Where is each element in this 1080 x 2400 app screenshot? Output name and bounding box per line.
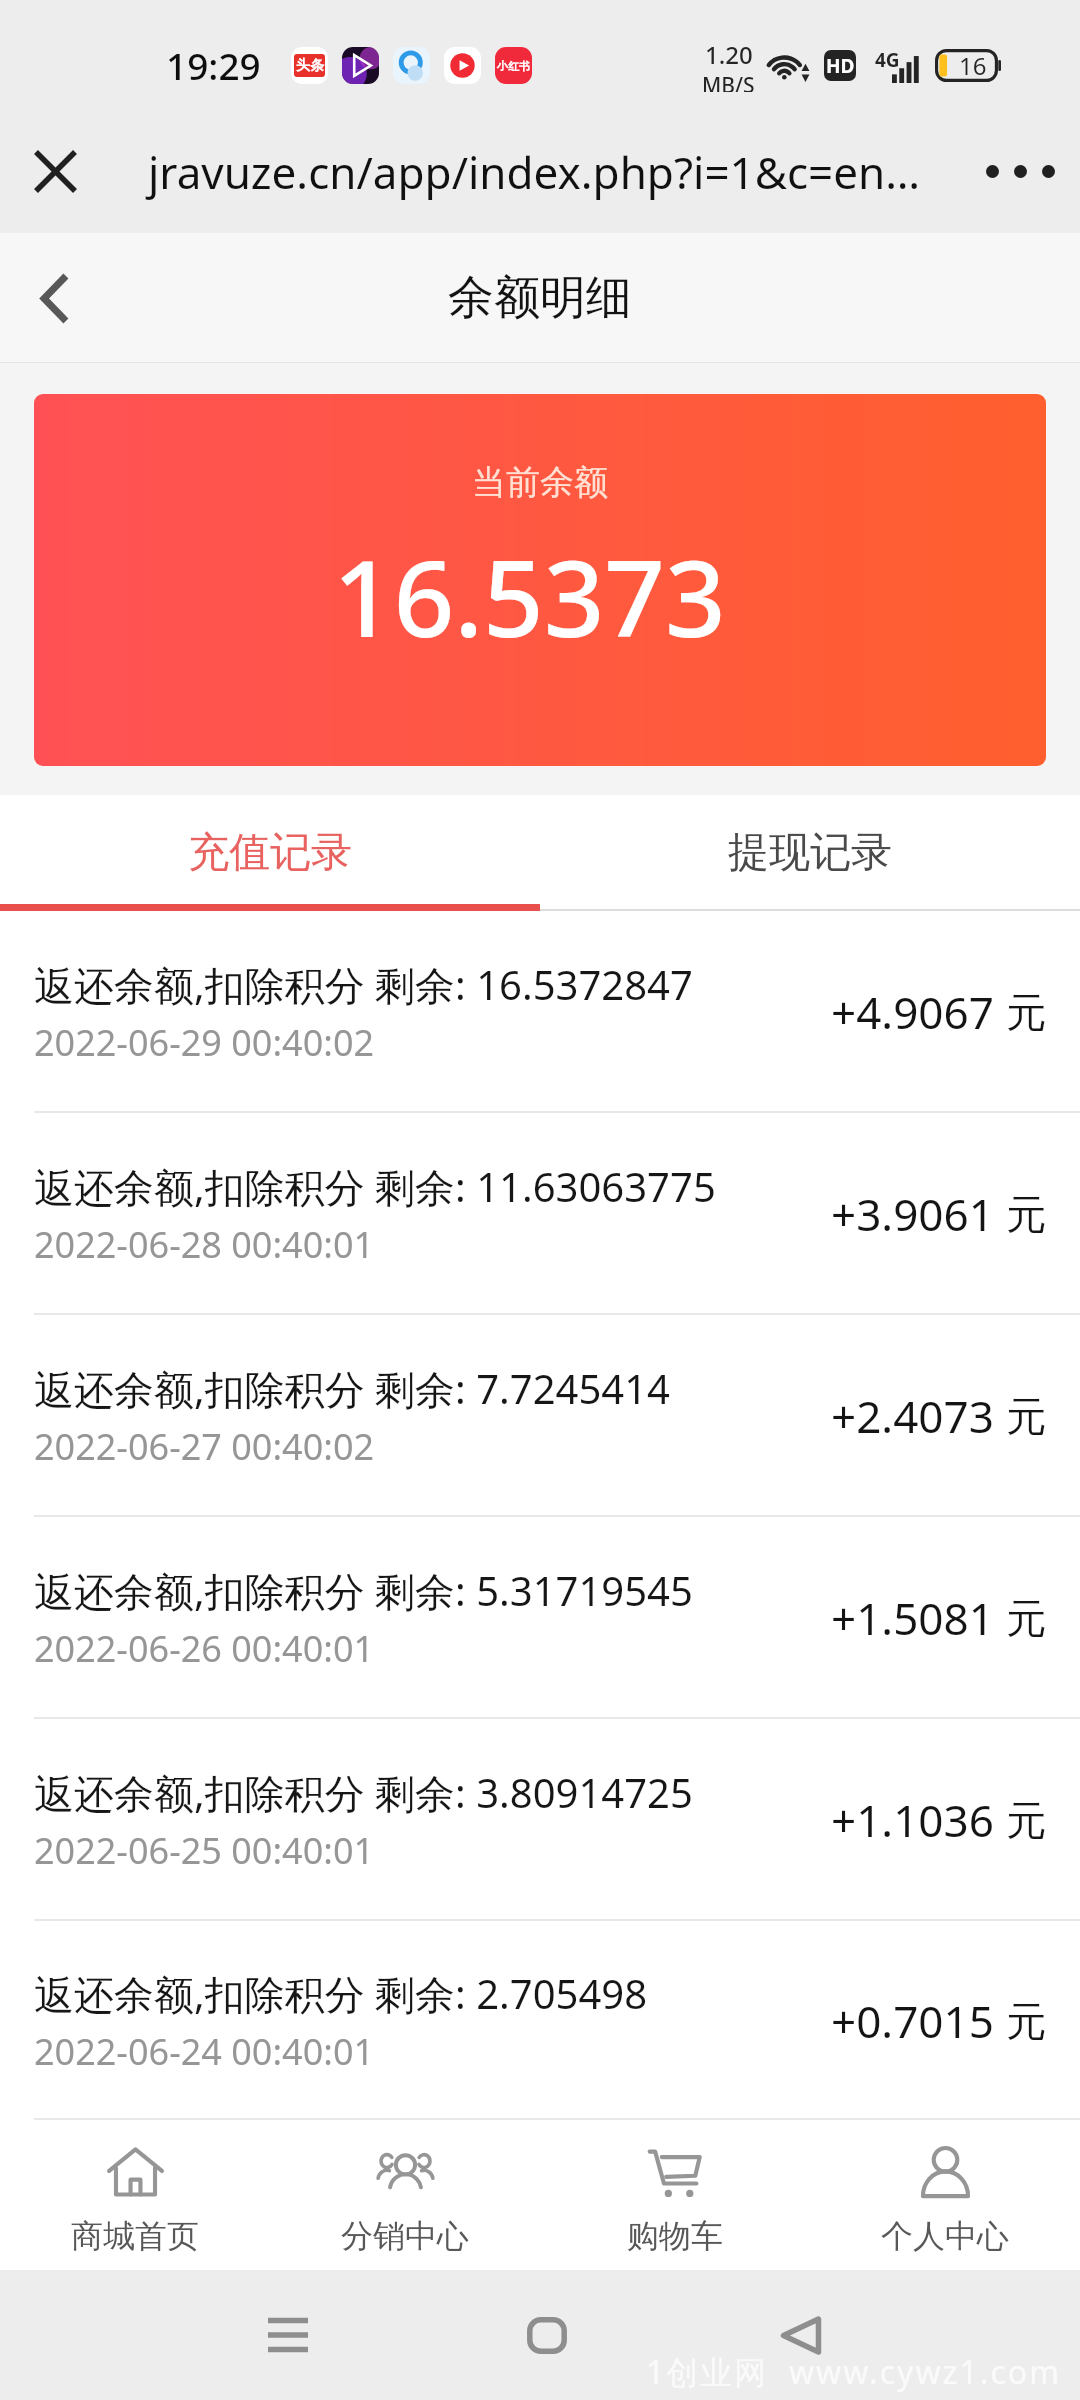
button[interactable]: 返还余额,扣除积分 剩余: 5.31719545 <box>0 1517 1080 1719</box>
staticText: 余额明细 <box>448 269 632 327</box>
staticText: 返还余额,扣除积分 剩余: 3.80914725 <box>34 1765 693 1820</box>
staticText: jravuze.cn/app/index.php?i=1&c=en… <box>148 142 921 202</box>
staticText: 2022-06-28 00:40:01 <box>34 1220 375 1269</box>
staticText: 1.20 <box>705 38 753 71</box>
button[interactable]: Close <box>0 110 110 233</box>
staticText: 元 <box>1006 1391 1046 1441</box>
button[interactable]: Recent apps <box>228 2270 348 2400</box>
staticText: 分销中心 <box>341 2216 469 2256</box>
staticText: +4.9067 <box>831 982 994 1042</box>
staticText: +3.9061 <box>831 1184 994 1244</box>
button[interactable]: 返还余额,扣除积分 剩余: 11.63063775 <box>0 1113 1080 1315</box>
button[interactable]: 返还余额,扣除积分 剩余: 2.705498 <box>0 1921 1080 2120</box>
button[interactable]: 商城首页 <box>0 2120 270 2270</box>
staticText: 2022-06-29 00:40:02 <box>34 1018 375 1067</box>
staticText: 返还余额,扣除积分 剩余: 11.63063775 <box>34 1159 716 1214</box>
staticText: 元 <box>1006 1795 1046 1845</box>
button[interactable]: 购物车 <box>540 2120 810 2270</box>
staticText: 返还余额,扣除积分 剩余: 2.705498 <box>34 1966 648 2021</box>
staticText: 购物车 <box>627 2216 723 2256</box>
button[interactable]: More options <box>960 110 1080 233</box>
button[interactable]: 充值记录 <box>0 795 540 911</box>
button[interactable]: 返还余额,扣除积分 剩余: 3.80914725 <box>0 1719 1080 1921</box>
button[interactable]: 返还余额,扣除积分 剩余: 16.5372847 <box>0 911 1080 1113</box>
staticText: 2022-06-25 00:40:01 <box>34 1826 375 1875</box>
staticText: 16 <box>959 49 987 82</box>
staticText: 商城首页 <box>71 2216 199 2256</box>
button[interactable]: 个人中心 <box>810 2120 1080 2270</box>
button[interactable]: Back <box>0 233 110 363</box>
staticText: +0.7015 <box>831 1991 994 2051</box>
staticText: 提现记录 <box>728 827 892 879</box>
staticText: 返还余额,扣除积分 剩余: 16.5372847 <box>34 957 693 1012</box>
button[interactable]: Back <box>741 2270 861 2400</box>
staticText: 元 <box>1006 1189 1046 1239</box>
staticText: 2022-06-26 00:40:01 <box>34 1624 375 1673</box>
staticText: +1.5081 <box>831 1588 994 1648</box>
staticText: 1创业网 www.cywz1.com <box>646 2350 1062 2394</box>
button[interactable]: 提现记录 <box>540 795 1080 911</box>
staticText: +1.1036 <box>831 1790 994 1850</box>
staticText: 2022-06-24 00:40:01 <box>34 2027 375 2076</box>
staticText: 头条 <box>296 57 324 75</box>
staticText: MB/S <box>702 71 755 92</box>
button[interactable]: 分销中心 <box>270 2120 540 2270</box>
staticText: 返还余额,扣除积分 剩余: 5.31719545 <box>34 1563 693 1618</box>
staticText: 元 <box>1006 1996 1046 2046</box>
staticText: HD <box>826 53 855 79</box>
staticText: +2.4073 <box>831 1386 994 1446</box>
staticText: 元 <box>1006 987 1046 1037</box>
button[interactable]: Home <box>487 2270 607 2400</box>
staticText: 19:29 <box>166 40 261 90</box>
staticText: 当前余额 <box>472 461 608 504</box>
staticText: 4G <box>875 47 900 73</box>
staticText: 返还余额,扣除积分 剩余: 7.7245414 <box>34 1361 670 1416</box>
staticText: 个人中心 <box>881 2216 1009 2256</box>
staticText: 2022-06-27 00:40:02 <box>34 1422 375 1471</box>
staticText: 元 <box>1006 1593 1046 1643</box>
staticText: 小红书 <box>497 59 530 73</box>
button[interactable]: 返还余额,扣除积分 剩余: 7.7245414 <box>0 1315 1080 1517</box>
staticText: 充值记录 <box>188 827 352 879</box>
staticText: 16.5373 <box>333 524 726 668</box>
